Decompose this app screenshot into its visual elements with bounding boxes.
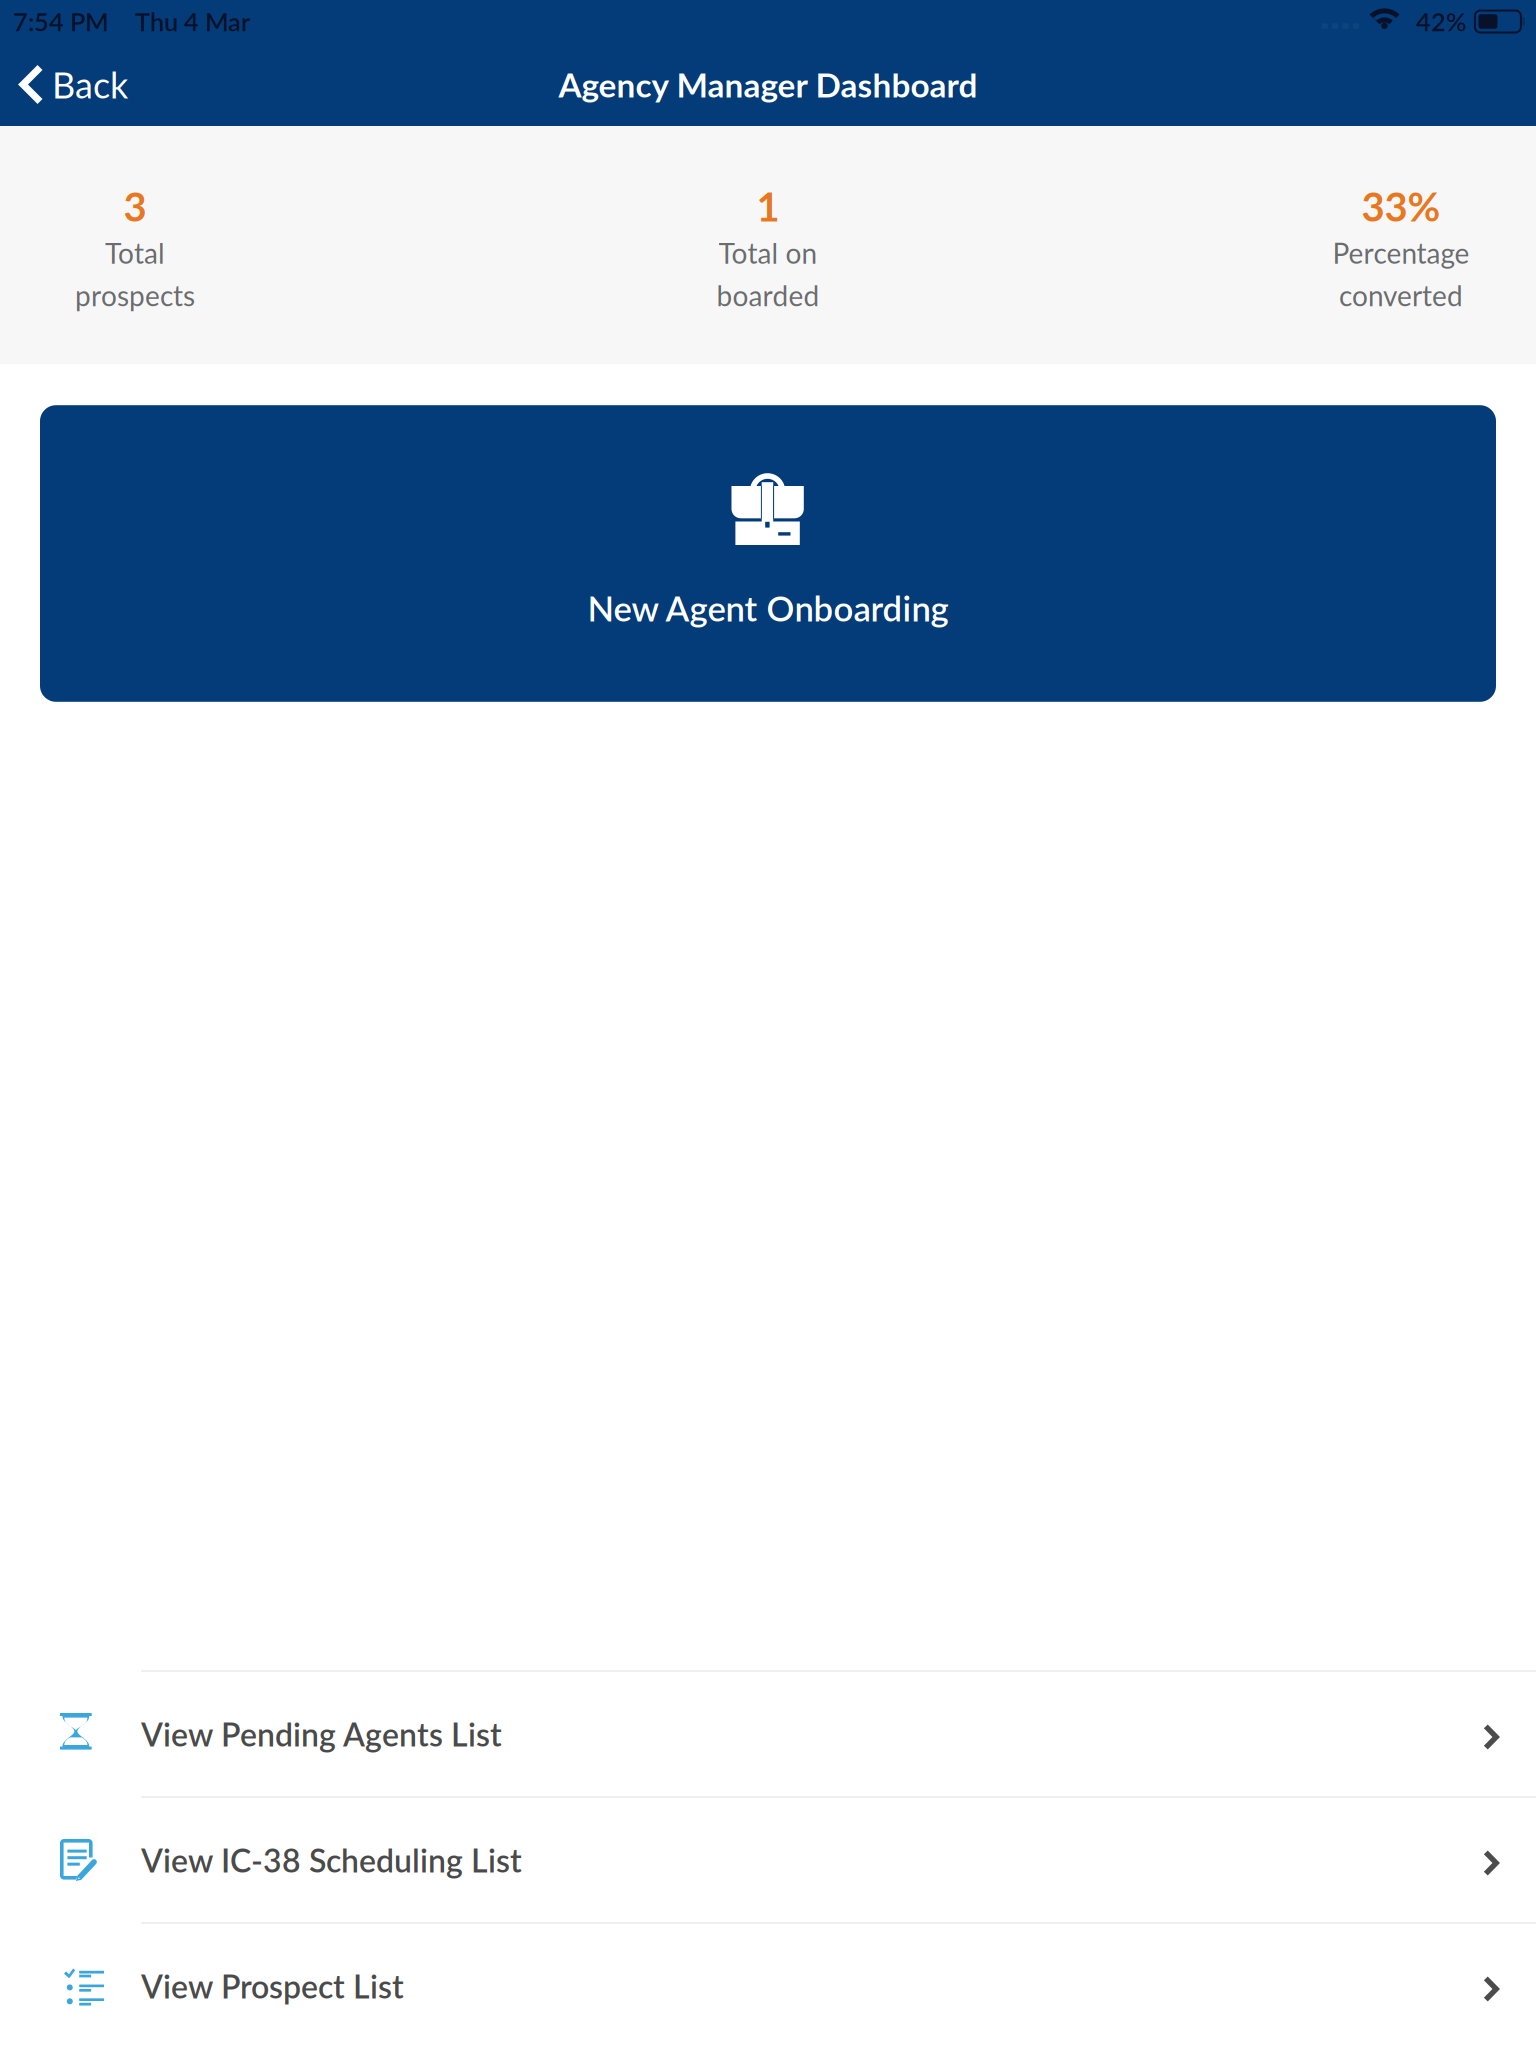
button[interactable]: New Agent Onboarding [40, 405, 1496, 702]
staticText: 1 [756, 182, 779, 230]
button[interactable]: View IC-38 Scheduling List [0, 1798, 1536, 1922]
staticText: Thu 4 Mar [135, 6, 250, 37]
staticText: 33% [1361, 182, 1440, 230]
button[interactable]: View Prospect List [0, 1924, 1536, 2048]
staticText: Total [105, 236, 165, 270]
staticText: Agency Manager Dashboard [558, 64, 977, 104]
button[interactable]: View Pending Agents List [0, 1672, 1536, 1796]
staticText: View IC-38 Scheduling List [141, 1841, 522, 1879]
staticText: boarded [716, 279, 819, 312]
button[interactable]: Back [0, 43, 146, 126]
staticText: Total on [718, 236, 817, 270]
staticText: View Pending Agents List [141, 1715, 502, 1753]
staticText: converted [1339, 279, 1463, 312]
staticText: 3 [123, 182, 146, 230]
staticText: View Prospect List [141, 1967, 404, 2005]
staticText: 42% [1416, 6, 1467, 37]
staticText: 7:54 PM [13, 6, 109, 37]
staticText: Percentage [1332, 236, 1469, 270]
staticText: New Agent Onboarding [587, 587, 948, 629]
staticText: prospects [75, 279, 195, 312]
staticText: Back [52, 63, 128, 106]
